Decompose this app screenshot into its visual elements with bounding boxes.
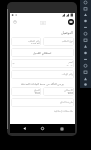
button[interactable]: المبلغ	[11, 87, 41, 96]
button[interactable]: اسم	[11, 59, 74, 68]
staticText: نوع الطلب	[61, 39, 73, 43]
button[interactable]: Recents	[57, 124, 66, 133]
staticText: ملاحظات إضافية	[54, 109, 74, 113]
staticText: 12345	[30, 43, 40, 44]
button[interactable]: Account	[68, 19, 74, 25]
button[interactable]: Wallet	[40, 21, 46, 25]
staticText: طريقة الدفع	[59, 100, 73, 104]
button[interactable]: الاجمالي	[43, 87, 74, 96]
button[interactable]: نوع الطلب	[43, 37, 74, 46]
button[interactable]: طريقة الدفع	[11, 98, 74, 107]
button[interactable]: رقم الهاتف	[11, 70, 74, 79]
button[interactable]: رقم الطلب	[11, 37, 41, 46]
button[interactable]: Back	[20, 124, 29, 133]
staticText: يرجى التأكد من صحة البيانات المدخلة	[21, 82, 64, 86]
staticText: 250	[34, 92, 40, 94]
staticText: عنوان	[65, 64, 73, 66]
button[interactable]: Home	[38, 124, 47, 133]
staticText: 300	[67, 92, 73, 94]
staticText: اسم	[68, 61, 73, 64]
staticText: التوصيل	[61, 31, 73, 35]
button[interactable]: استعلام العميل	[11, 48, 74, 57]
staticText: رقم الطلب	[28, 39, 40, 43]
staticText: رقم الهاتف	[61, 72, 73, 76]
button[interactable]: Profile	[13, 20, 17, 24]
staticText: المبلغ	[33, 89, 40, 92]
staticText: استعلام العميل	[33, 51, 52, 55]
staticText: الاجمالي	[63, 89, 73, 92]
